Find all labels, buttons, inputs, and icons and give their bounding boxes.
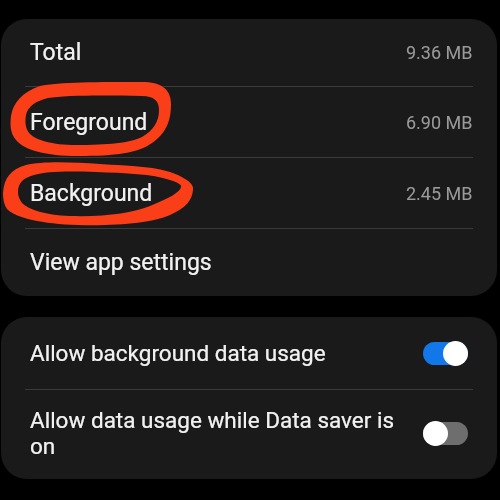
button[interactable]: Background xyxy=(1,158,497,228)
staticText: Background xyxy=(30,180,153,207)
staticText: 9.36 MB xyxy=(406,42,473,63)
staticText: Allow data usage while Data saver is on xyxy=(30,407,400,459)
staticText: View app settings xyxy=(30,249,212,276)
button[interactable]: View app settings xyxy=(1,229,497,296)
staticText: 2.45 MB xyxy=(406,183,473,204)
staticText: Total xyxy=(30,39,82,66)
staticText: Allow background data usage xyxy=(30,340,326,366)
button[interactable]: Total xyxy=(1,19,497,86)
button[interactable]: Foreground xyxy=(1,87,497,157)
other: Allow background data usage xyxy=(423,340,468,366)
button[interactable]: Allow data usage while Data saver is on xyxy=(1,390,497,479)
button[interactable]: Allow background data usage xyxy=(1,317,497,389)
staticText: 6.90 MB xyxy=(406,112,473,133)
other: Allow data usage while Data saver is on xyxy=(423,420,468,446)
staticText: Foreground xyxy=(30,109,148,136)
